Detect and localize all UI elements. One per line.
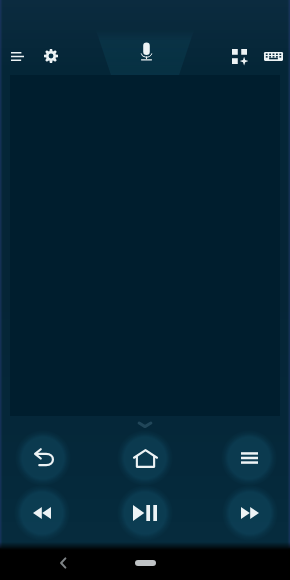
button[interactable]: Play pause <box>117 485 173 541</box>
button[interactable]: Rewind <box>14 485 70 541</box>
button[interactable]: Apps menu <box>221 430 277 486</box>
button[interactable]: Home <box>117 430 173 486</box>
button[interactable]: Back <box>52 552 74 574</box>
button[interactable]: Home <box>127 551 163 575</box>
button[interactable]: Add shortcut <box>222 39 256 73</box>
button[interactable]: Back <box>15 430 71 486</box>
button[interactable]: Menu <box>0 39 34 73</box>
button[interactable]: Voice input <box>129 34 163 68</box>
button[interactable]: Settings <box>34 39 68 73</box>
button[interactable]: Keyboard <box>256 39 290 73</box>
button[interactable]: Collapse <box>131 416 159 432</box>
button[interactable]: Fast forward <box>222 485 278 541</box>
